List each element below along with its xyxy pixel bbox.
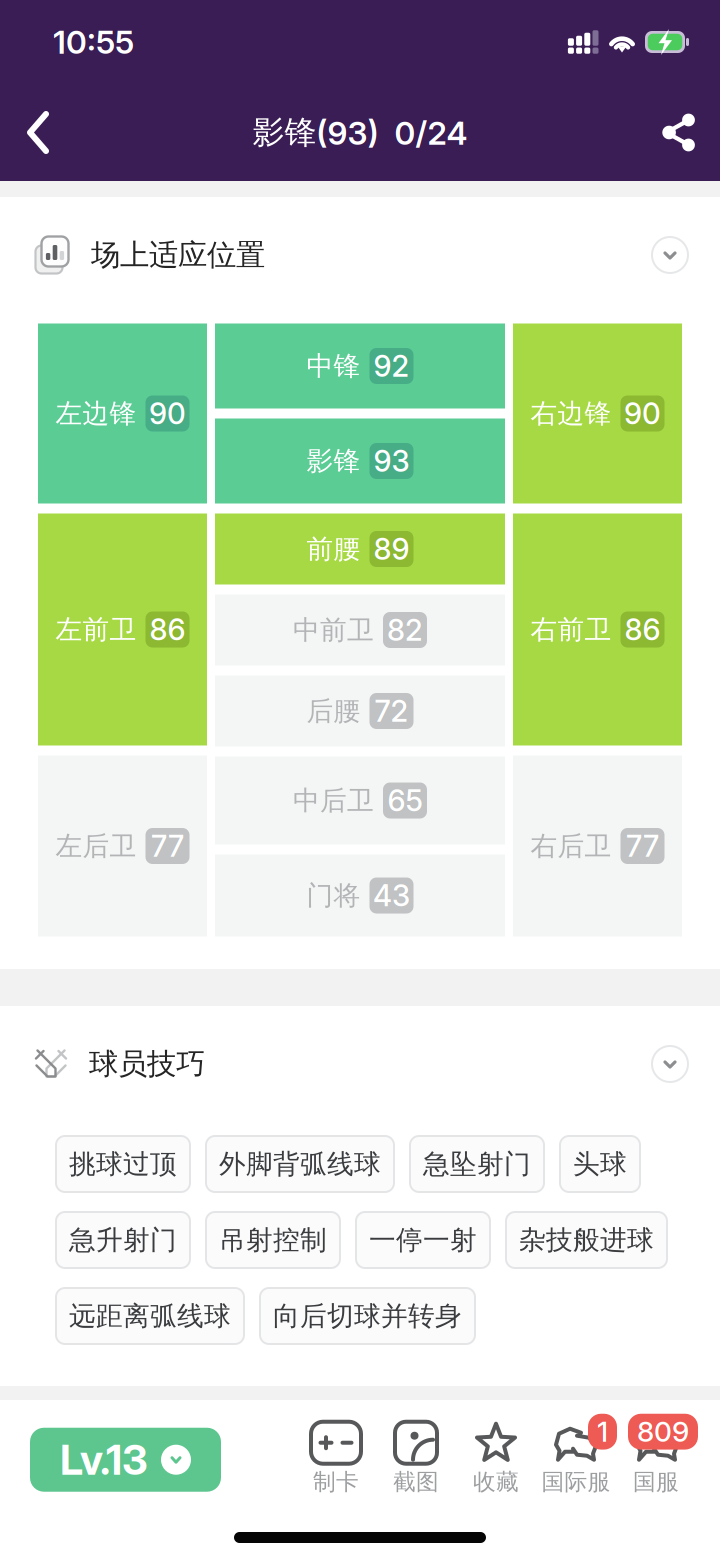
staticText: 中前卫: [293, 613, 374, 647]
staticText: 外脚背弧线球: [219, 1147, 381, 1181]
button[interactable]: 收藏: [456, 1410, 536, 1496]
staticText: 86: [624, 612, 660, 647]
staticText: 43: [373, 878, 410, 913]
button[interactable]: 右前卫: [513, 513, 682, 745]
staticText: 90: [624, 396, 661, 431]
staticText: 左前卫: [55, 613, 136, 646]
staticText: 制卡: [313, 1468, 359, 1496]
staticText: 后腰: [306, 694, 360, 728]
button[interactable]: 中后卫: [215, 756, 505, 844]
button[interactable]: 809: [616, 1410, 696, 1496]
staticText: 86: [149, 612, 185, 647]
staticText: 影锋: [306, 444, 360, 478]
staticText: 前腰: [306, 532, 360, 566]
button[interactable]: 前腰: [215, 513, 505, 584]
staticText: 92: [373, 348, 409, 384]
staticText: 左边锋: [55, 397, 136, 430]
button[interactable]: 急升射门: [56, 1212, 190, 1268]
staticText: 65: [387, 783, 422, 818]
button[interactable]: 中前卫: [215, 594, 505, 665]
staticText: 左后卫: [55, 829, 136, 863]
staticText: 杂技般进球: [519, 1223, 654, 1257]
staticText: 10:55: [53, 23, 134, 61]
button[interactable]: Share: [641, 92, 717, 172]
button[interactable]: Back: [0, 92, 76, 172]
staticText: 90: [149, 396, 186, 431]
button[interactable]: 门将: [215, 854, 505, 936]
staticText: 影锋(93) 0/24: [252, 112, 467, 153]
staticText: 挑球过顶: [69, 1147, 177, 1181]
staticText: 中后卫: [293, 784, 374, 817]
staticText: 93: [373, 443, 409, 479]
button[interactable]: 影锋: [215, 418, 505, 503]
button[interactable]: 杂技般进球: [506, 1212, 667, 1268]
staticText: 球员技巧: [89, 1045, 205, 1082]
button[interactable]: 制卡: [296, 1410, 376, 1496]
button[interactable]: 吊射控制: [206, 1212, 340, 1268]
staticText: 89: [373, 531, 409, 567]
staticText: 1: [597, 1415, 608, 1449]
button[interactable]: 左后卫: [38, 755, 207, 936]
button[interactable]: 截图: [376, 1410, 456, 1496]
button[interactable]: 右后卫: [513, 755, 682, 936]
staticText: 吊射控制: [219, 1223, 327, 1257]
staticText: 收藏: [473, 1468, 519, 1496]
staticText: 急坠射门: [423, 1147, 531, 1181]
button[interactable]: Lv.13: [30, 1428, 221, 1492]
button[interactable]: 远距离弧线球: [56, 1288, 244, 1344]
staticText: 国际服: [541, 1468, 610, 1496]
button[interactable]: 挑球过顶: [56, 1136, 190, 1192]
button[interactable]: 右边锋: [513, 323, 682, 503]
staticText: 中锋: [306, 349, 360, 383]
button[interactable]: 外脚背弧线球: [206, 1136, 394, 1192]
staticText: 急升射门: [69, 1223, 177, 1257]
button[interactable]: 头球: [560, 1136, 640, 1192]
staticText: 向后切球并转身: [273, 1299, 462, 1333]
button[interactable]: Collapse section: [644, 1038, 696, 1090]
button[interactable]: 急坠射门: [410, 1136, 544, 1192]
staticText: 77: [626, 828, 659, 864]
button[interactable]: 1: [536, 1410, 616, 1496]
staticText: 82: [387, 612, 423, 648]
staticText: 809: [637, 1415, 689, 1449]
button[interactable]: Collapse section: [644, 229, 696, 281]
button[interactable]: 一停一射: [356, 1212, 490, 1268]
staticText: 国服: [633, 1468, 679, 1496]
staticText: 77: [151, 828, 184, 864]
button[interactable]: 中锋: [215, 323, 505, 408]
staticText: 一停一射: [369, 1223, 477, 1257]
staticText: 右前卫: [530, 613, 611, 646]
button[interactable]: 左前卫: [38, 513, 207, 745]
button[interactable]: 左边锋: [38, 323, 207, 503]
staticText: 截图: [393, 1468, 439, 1496]
staticText: 头球: [573, 1147, 627, 1181]
staticText: 72: [374, 693, 408, 729]
staticText: 右后卫: [530, 829, 611, 863]
button[interactable]: 后腰: [215, 675, 505, 746]
staticText: 远距离弧线球: [69, 1299, 231, 1333]
button[interactable]: 向后切球并转身: [260, 1288, 475, 1344]
staticText: Lv.13: [60, 1435, 148, 1485]
staticText: 门将: [306, 879, 360, 912]
staticText: 场上适应位置: [91, 236, 265, 273]
staticText: 右边锋: [530, 397, 611, 430]
